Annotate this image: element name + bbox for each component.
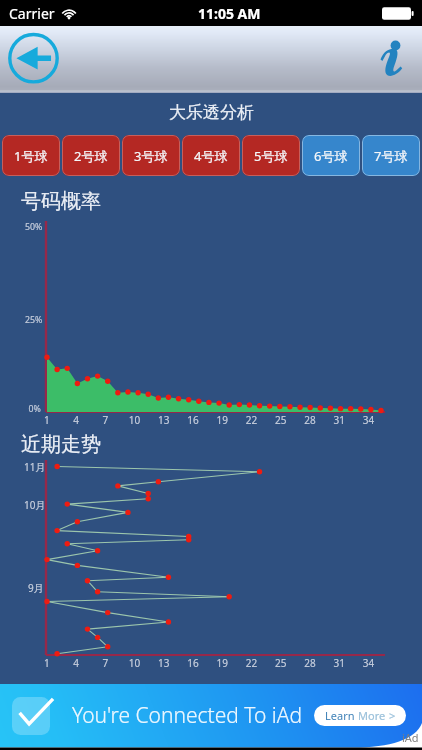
button[interactable]: Learn	[314, 705, 406, 726]
button[interactable]: iAd banner	[0, 684, 422, 750]
button[interactable]: 3号球	[122, 135, 180, 176]
staticText: 4号球	[194, 147, 228, 165]
button[interactable]: 4号球	[182, 135, 240, 176]
staticText: 1号球	[14, 147, 48, 165]
button[interactable]: 2号球	[62, 135, 120, 176]
staticText: 大乐透分析	[169, 102, 254, 123]
button[interactable]: 5号球	[242, 135, 300, 176]
staticText: 6号球	[314, 147, 348, 165]
button[interactable]: Info	[368, 36, 416, 84]
staticText: More	[358, 708, 389, 723]
staticText: 号码概率	[21, 189, 101, 214]
button[interactable]: 6号球	[302, 135, 360, 176]
button[interactable]: Back	[7, 31, 61, 85]
staticText: 3号球	[134, 147, 168, 165]
staticText: >	[389, 708, 396, 723]
staticText: Carrier	[9, 4, 55, 23]
staticText: 5号球	[254, 147, 288, 165]
staticText: 2号球	[74, 147, 108, 165]
staticText: 近期走势	[21, 432, 101, 457]
staticText: iAd	[402, 730, 419, 745]
button[interactable]: 7号球	[362, 135, 420, 176]
button[interactable]: 1号球	[2, 135, 60, 176]
staticText: 7号球	[374, 147, 408, 165]
staticText: Learn	[325, 708, 358, 723]
staticText: You're Connected To iAd	[72, 701, 303, 730]
staticText: 11:05 AM	[198, 4, 261, 23]
